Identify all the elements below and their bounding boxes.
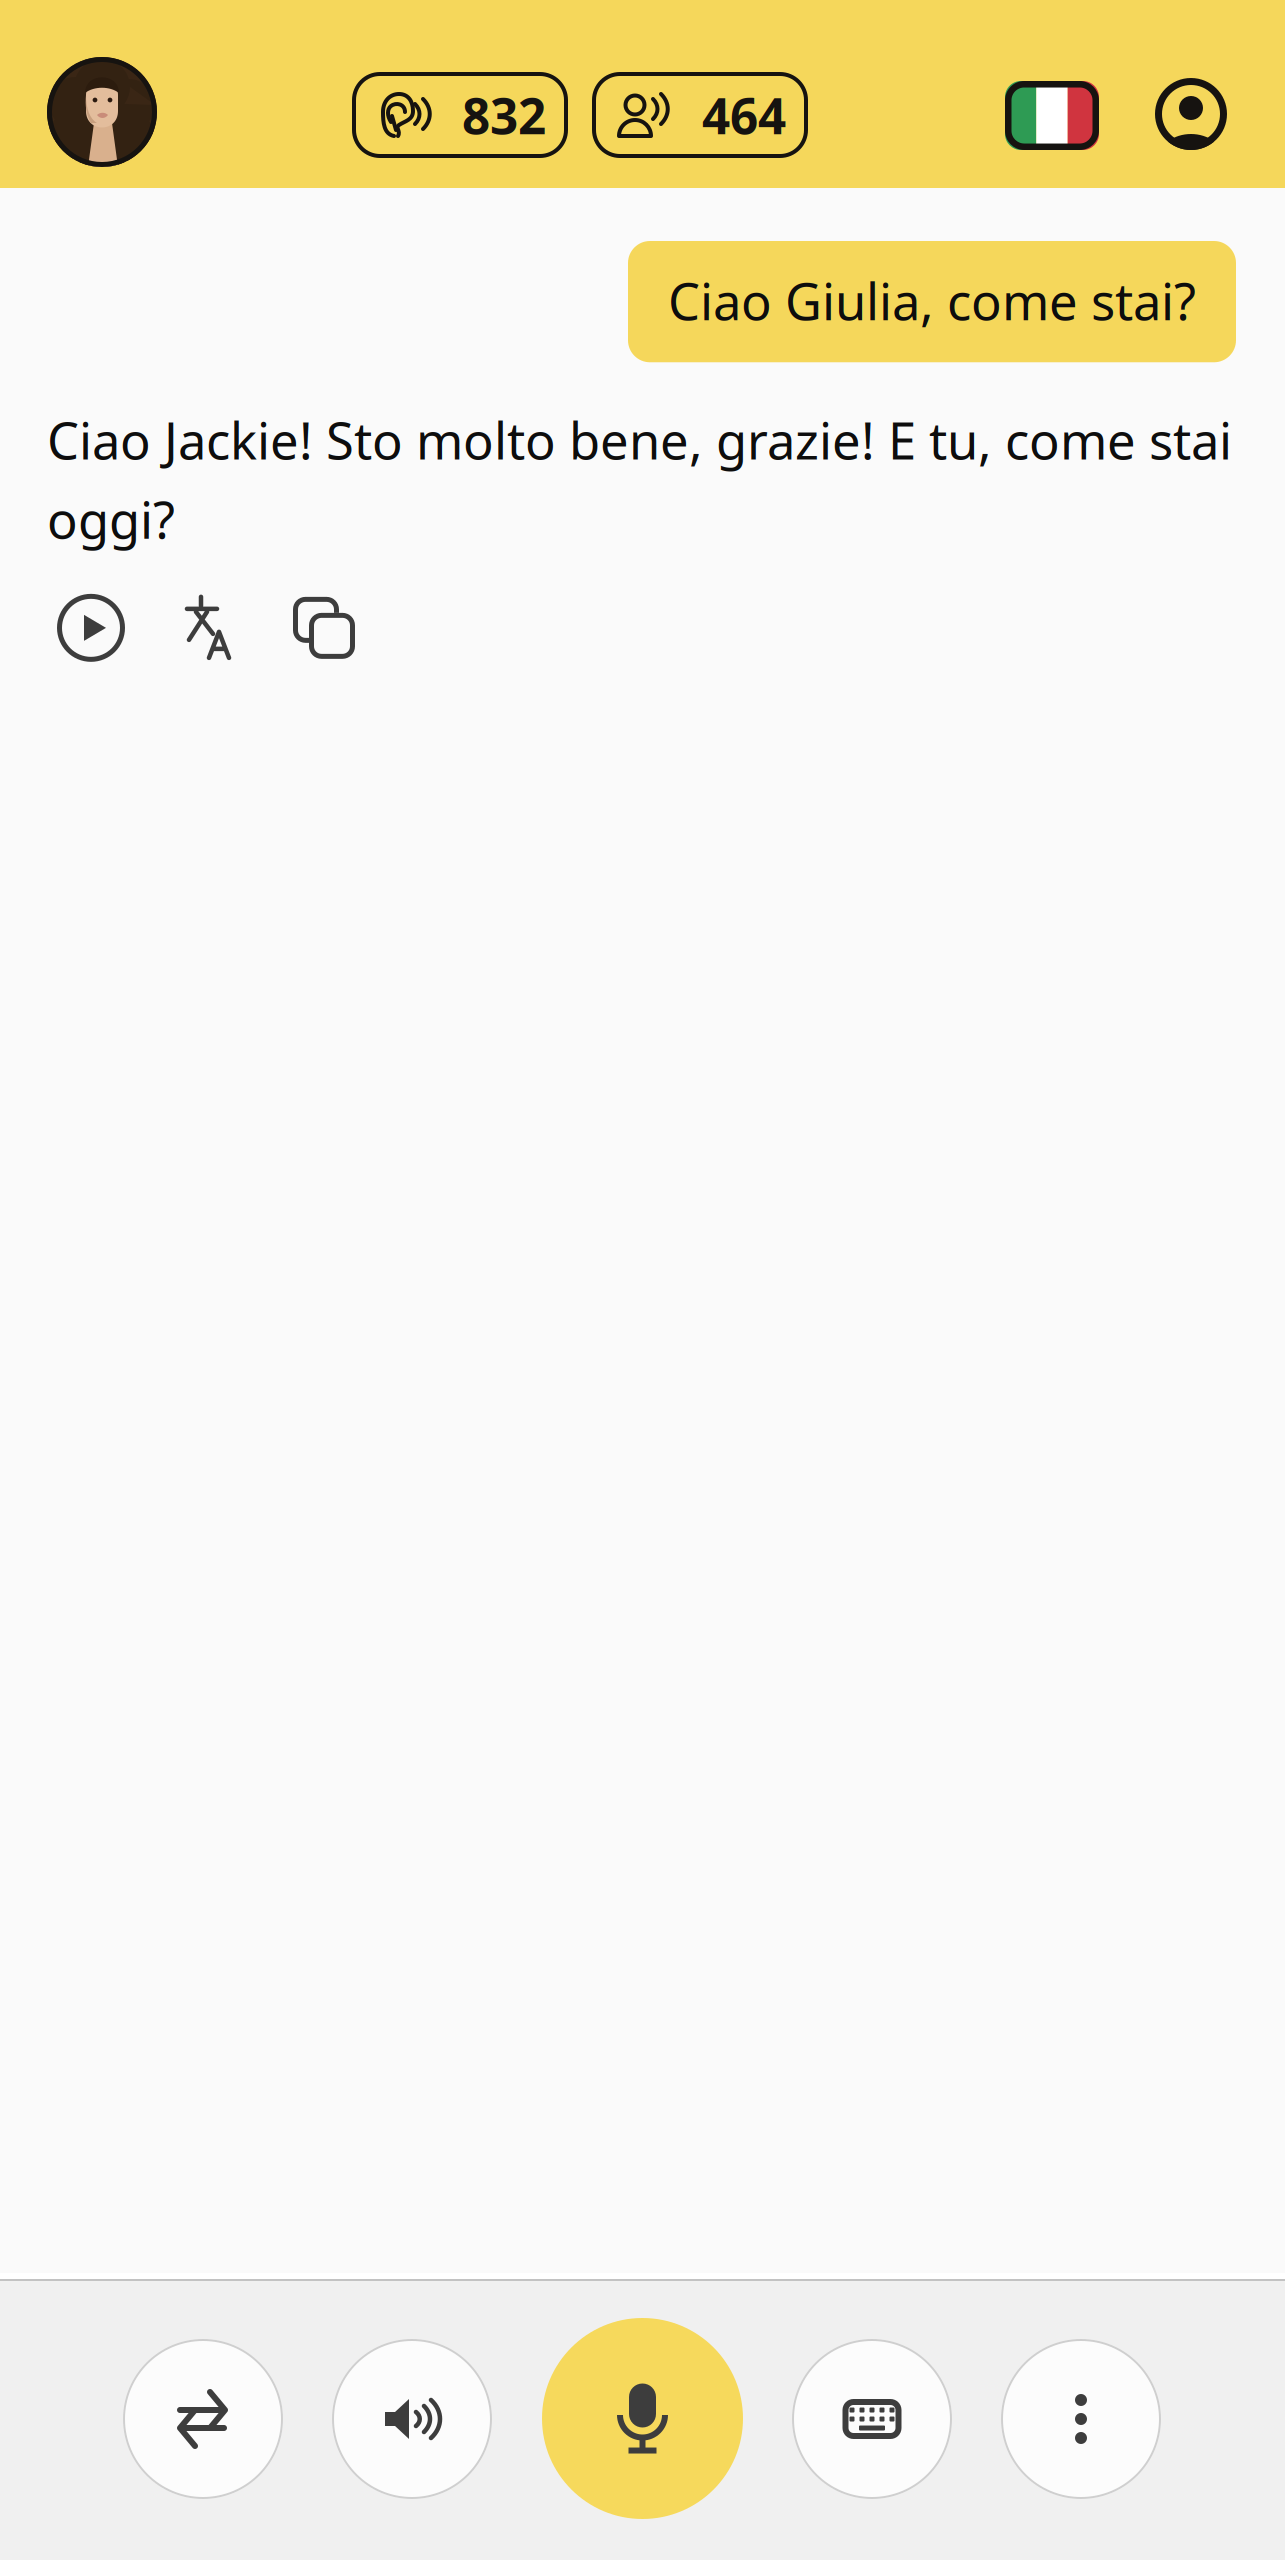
staticText: Ciao Giulia, come stai? bbox=[668, 267, 1196, 334]
button[interactable]: Account bbox=[1155, 78, 1227, 150]
button[interactable]: Words spoken 464 bbox=[592, 72, 808, 158]
staticText: 832 bbox=[462, 82, 546, 148]
button[interactable]: Language Italian bbox=[1005, 81, 1099, 150]
button[interactable]: Swap languages bbox=[123, 2339, 283, 2499]
button[interactable]: Copy bbox=[292, 596, 356, 660]
staticText: Ciao Jackie! Sto molto bene, grazie! E t… bbox=[47, 406, 1232, 553]
button[interactable]: Words heard 832 bbox=[352, 72, 568, 158]
button[interactable]: More options bbox=[1001, 2339, 1161, 2499]
button[interactable]: Play audio bbox=[57, 594, 125, 662]
button[interactable]: Record bbox=[542, 2318, 743, 2519]
button[interactable]: Translate bbox=[185, 596, 231, 660]
button[interactable]: Speaker bbox=[332, 2339, 492, 2499]
staticText: 464 bbox=[702, 82, 786, 148]
button[interactable]: Keyboard bbox=[792, 2339, 952, 2499]
button[interactable]: Your profile bbox=[47, 57, 157, 167]
